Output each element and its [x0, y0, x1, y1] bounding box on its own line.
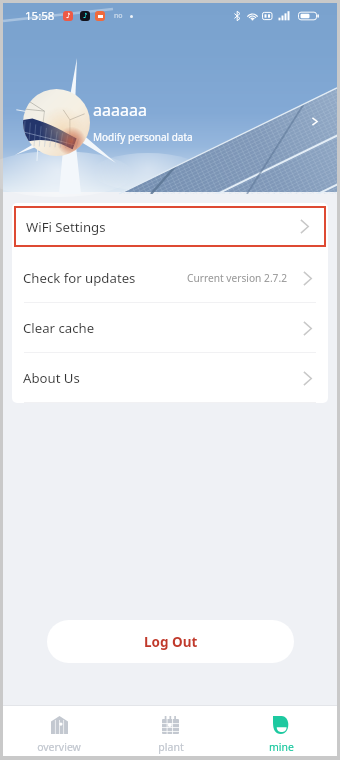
button[interactable]: About Us — [23, 353, 312, 403]
staticText: aaaaaa — [93, 99, 147, 121]
button[interactable]: Check for updates — [23, 253, 312, 303]
staticText: ♪ — [66, 12, 71, 20]
staticText: overview — [37, 740, 81, 754]
staticText: About Us — [23, 369, 80, 387]
staticText: mine — [269, 740, 294, 754]
button[interactable]: plant — [115, 706, 226, 756]
staticText: Clear cache — [23, 319, 95, 337]
other: Edit profile — [308, 115, 321, 128]
button[interactable]: Log Out — [47, 620, 294, 663]
staticText: no — [114, 11, 123, 21]
button[interactable]: overview — [3, 706, 115, 756]
staticText: Log Out — [144, 633, 198, 651]
staticText: Current version 2.7.2 — [187, 271, 287, 285]
staticText: WiFi Settings — [26, 218, 106, 236]
button[interactable]: mine — [226, 706, 337, 756]
button[interactable]: WiFi Settings — [26, 208, 309, 245]
staticText: Modify personal data — [93, 130, 193, 144]
staticText: ♪ — [83, 12, 88, 20]
staticText: Check for updates — [23, 269, 136, 287]
staticText: 15:58 — [25, 8, 55, 24]
button[interactable]: Clear cache — [23, 303, 312, 353]
button[interactable]: aaaaaa — [93, 91, 321, 151]
staticText: plant — [158, 740, 184, 754]
